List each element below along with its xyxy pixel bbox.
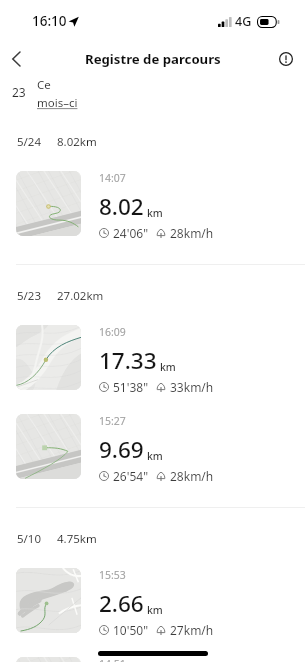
staticText: 5/23	[17, 288, 42, 304]
staticText: 10'50"	[113, 622, 149, 638]
staticText: 15:53	[99, 568, 126, 582]
staticText: 5/24	[17, 134, 42, 150]
staticText: km	[147, 603, 163, 617]
button[interactable]: 15:53	[0, 568, 305, 638]
staticText: 5/10	[17, 531, 42, 547]
staticText: 14:51	[99, 657, 126, 662]
staticText: 16:09	[99, 325, 126, 339]
staticText: 15:27	[99, 414, 126, 428]
staticText: 24'06"	[113, 225, 149, 241]
staticText: 9.69	[99, 434, 144, 465]
staticText: 17.33	[99, 345, 157, 376]
button[interactable]: 16:09	[0, 325, 305, 395]
staticText: 4G	[235, 13, 252, 30]
staticText: 14:07	[99, 171, 126, 185]
staticText: km	[147, 449, 163, 463]
staticText: 28km/h	[170, 225, 214, 241]
staticText: 26'54"	[113, 468, 149, 484]
staticText: 23	[12, 84, 26, 100]
button[interactable]: Ce	[37, 77, 78, 111]
button[interactable]: Info	[272, 45, 300, 73]
staticText: 16:10	[32, 12, 67, 30]
staticText: 8.02	[99, 191, 144, 222]
staticText: 2.66	[99, 588, 144, 619]
button[interactable]: Back	[1, 44, 31, 74]
staticText: Ce	[37, 77, 51, 93]
staticText: Registre de parcours	[85, 50, 221, 68]
staticText: 51'38"	[113, 379, 149, 395]
button[interactable]: 14:07	[0, 171, 305, 241]
button[interactable]: 14:51	[0, 657, 305, 662]
staticText: 8.02km	[57, 134, 97, 150]
staticText: km	[147, 206, 163, 220]
staticText: 28km/h	[170, 468, 214, 484]
staticText: 33km/h	[170, 379, 214, 395]
staticText: 27.02km	[57, 288, 104, 304]
staticText: 27km/h	[170, 622, 214, 638]
button[interactable]: 15:27	[0, 414, 305, 484]
staticText: mois–ci	[37, 95, 78, 111]
staticText: km	[160, 360, 176, 374]
staticText: 4.75km	[57, 531, 97, 547]
